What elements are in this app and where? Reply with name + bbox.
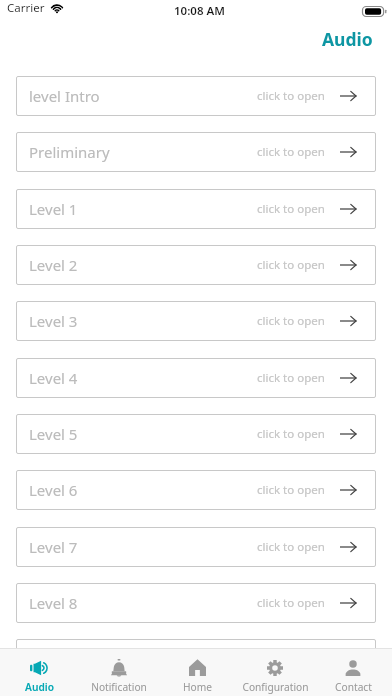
button[interactable]: Level 6 — [16, 470, 376, 510]
other: Open Level 6 — [340, 483, 356, 497]
button[interactable]: Preliminary — [16, 132, 376, 172]
button[interactable]: Level 9 — [16, 639, 376, 679]
staticText: Level 2 — [29, 255, 78, 275]
staticText: click to open — [257, 144, 325, 160]
staticText: click to open — [257, 313, 325, 329]
button[interactable]: Configuration — [236, 651, 314, 694]
button[interactable]: Home — [158, 651, 236, 694]
staticText: click to open — [257, 370, 325, 386]
button[interactable]: Notification — [79, 651, 158, 694]
button[interactable]: Level 4 — [16, 358, 376, 398]
other: Open Level 7 — [340, 540, 356, 554]
staticText: click to open — [257, 426, 325, 442]
other: Open level Intro — [340, 89, 356, 103]
staticText: Level 8 — [29, 593, 78, 613]
button[interactable]: Level 1 — [16, 189, 376, 229]
staticText: Preliminary — [29, 142, 110, 162]
staticText: Contact — [335, 680, 372, 694]
button[interactable]: Level 7 — [16, 527, 376, 567]
staticText: Level 5 — [29, 424, 78, 444]
staticText: click to open — [257, 539, 325, 555]
staticText: Audio — [25, 680, 54, 694]
staticText: Level 4 — [29, 368, 78, 388]
other: Open Level 8 — [340, 596, 356, 610]
button[interactable]: Contact — [314, 651, 392, 694]
staticText: Level 3 — [29, 311, 78, 331]
staticText: click to open — [257, 257, 325, 273]
button[interactable]: level Intro — [16, 76, 376, 116]
other: Open Level 3 — [340, 314, 356, 328]
other: Open Preliminary — [340, 145, 356, 159]
staticText: click to open — [257, 651, 325, 667]
staticText: Level 9 — [29, 649, 78, 669]
other: Open Level 9 — [340, 652, 356, 666]
staticText: Level 6 — [29, 480, 78, 500]
staticText: Audio — [322, 27, 373, 51]
other: Open Level 4 — [340, 371, 356, 385]
button[interactable]: Level 8 — [16, 583, 376, 623]
staticText: 10:08 AM — [174, 3, 225, 19]
staticText: level Intro — [29, 86, 100, 106]
other: Open Level 1 — [340, 202, 356, 216]
button[interactable]: Level 2 — [16, 245, 376, 285]
staticText: click to open — [257, 595, 325, 611]
staticText: Notification — [91, 680, 147, 694]
other: Battery full — [362, 6, 387, 17]
other: Open Level 2 — [340, 258, 356, 272]
button[interactable]: Audio — [0, 651, 79, 694]
other: Open Level 5 — [340, 427, 356, 441]
staticText: Home — [183, 680, 212, 694]
staticText: Carrier — [7, 0, 45, 16]
staticText: click to open — [257, 201, 325, 217]
other: Wi-Fi signal — [51, 3, 63, 13]
staticText: click to open — [257, 88, 325, 104]
button[interactable]: Level 5 — [16, 414, 376, 454]
staticText: Level 7 — [29, 537, 78, 557]
button[interactable]: Level 3 — [16, 301, 376, 341]
staticText: Configuration — [242, 680, 309, 694]
staticText: click to open — [257, 482, 325, 498]
staticText: Level 1 — [29, 199, 78, 219]
